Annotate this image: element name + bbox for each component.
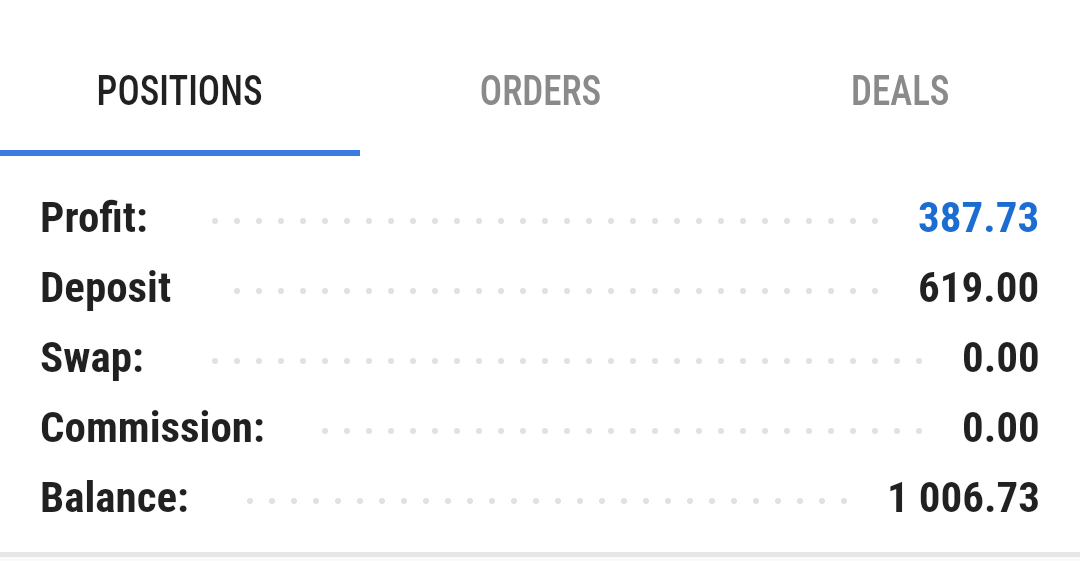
staticText: 1 006.73 xyxy=(887,472,1040,522)
staticText: ORDERS xyxy=(480,65,601,115)
staticText: 0.00 xyxy=(962,402,1040,452)
staticText: DEALS xyxy=(851,65,950,115)
staticText: Deposit xyxy=(40,262,172,312)
button[interactable]: Swap: xyxy=(40,322,1040,392)
button[interactable]: DEALS xyxy=(720,0,1080,156)
staticText: 0.00 xyxy=(962,332,1040,382)
staticText: Commission: xyxy=(40,402,265,452)
staticText: Profit: xyxy=(40,192,148,242)
button[interactable]: POSITIONS xyxy=(0,0,360,156)
button[interactable]: Deposit xyxy=(40,252,1040,322)
button[interactable]: Balance: xyxy=(40,462,1040,532)
staticText: 387.73 xyxy=(918,192,1040,242)
button[interactable]: ORDERS xyxy=(360,0,720,156)
staticText: Balance: xyxy=(40,472,189,522)
staticText: 619.00 xyxy=(918,262,1040,312)
button[interactable]: Profit: xyxy=(40,182,1040,252)
staticText: POSITIONS xyxy=(97,65,263,115)
staticText: Swap: xyxy=(40,332,144,382)
button[interactable]: Commission: xyxy=(40,392,1040,462)
